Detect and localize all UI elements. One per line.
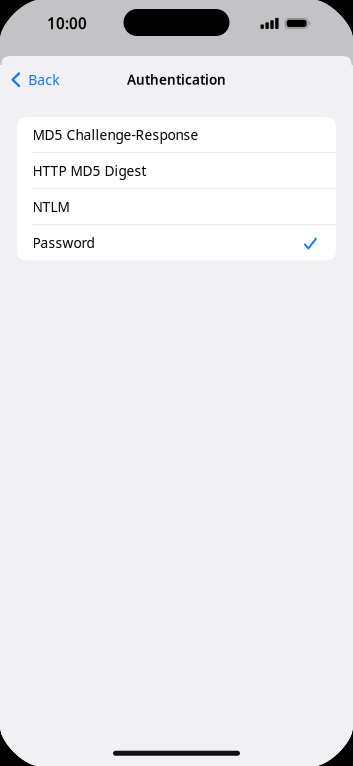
- button[interactable]: MD5 Challenge-Response: [17, 117, 336, 152]
- staticText: NTLM: [32, 197, 69, 216]
- staticText: Password: [32, 233, 94, 252]
- staticText: HTTP MD5 Digest: [32, 161, 146, 180]
- staticText: Back: [28, 70, 59, 89]
- button[interactable]: Password: [17, 225, 336, 260]
- staticText: 10:00: [47, 13, 87, 34]
- button[interactable]: Back: [1, 58, 71, 98]
- button[interactable]: HTTP MD5 Digest: [17, 153, 336, 188]
- staticText: MD5 Challenge-Response: [32, 125, 198, 144]
- button[interactable]: NTLM: [17, 189, 336, 224]
- staticText: Authentication: [127, 70, 226, 89]
